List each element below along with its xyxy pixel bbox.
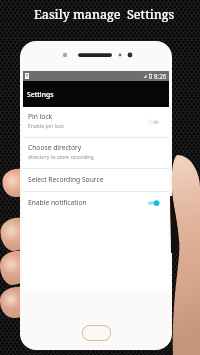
staticText: 8:26 (154, 72, 167, 80)
staticText: directory to store recording (28, 154, 94, 161)
staticText: Settings (27, 90, 54, 99)
button[interactable]: Pin lock (23, 107, 169, 137)
staticText: Enable pin lock (28, 123, 64, 130)
button[interactable]: Select Recording Source (23, 169, 169, 191)
staticText: Select Recording Source (28, 175, 104, 184)
button[interactable]: Home (82, 325, 111, 341)
staticText: Easily manage Settings (34, 6, 175, 23)
button[interactable]: Choose directory (23, 138, 169, 168)
button[interactable]: Enable notification (23, 192, 169, 214)
staticText: Enable notification (28, 198, 87, 207)
staticText: Pin lock (28, 112, 53, 121)
staticText: Choose directory (28, 143, 82, 152)
